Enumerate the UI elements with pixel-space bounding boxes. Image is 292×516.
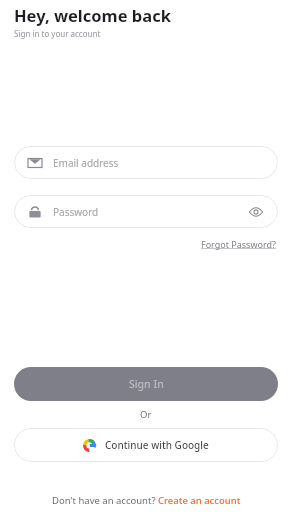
staticText: Create an account bbox=[158, 494, 241, 507]
staticText: Don't have an account? bbox=[52, 494, 158, 507]
staticText: Sign In bbox=[129, 377, 164, 391]
button[interactable]: Password bbox=[14, 195, 278, 228]
staticText: Continue with Google bbox=[105, 438, 209, 452]
staticText: Sign in to your account bbox=[14, 28, 101, 39]
staticText: Or bbox=[140, 408, 152, 421]
button[interactable]: Create an account bbox=[158, 494, 241, 507]
button[interactable]: Show password bbox=[246, 202, 266, 222]
staticText: Password bbox=[53, 205, 246, 219]
button[interactable]: Continue with Google bbox=[14, 428, 278, 462]
staticText: Email address bbox=[53, 156, 119, 170]
staticText: Forgot Password? bbox=[201, 238, 276, 250]
staticText: Hey, welcome back bbox=[14, 4, 171, 26]
button[interactable]: Email address bbox=[14, 146, 278, 179]
button[interactable]: Forgot Password? bbox=[199, 237, 278, 251]
button[interactable]: Sign In bbox=[14, 367, 278, 401]
